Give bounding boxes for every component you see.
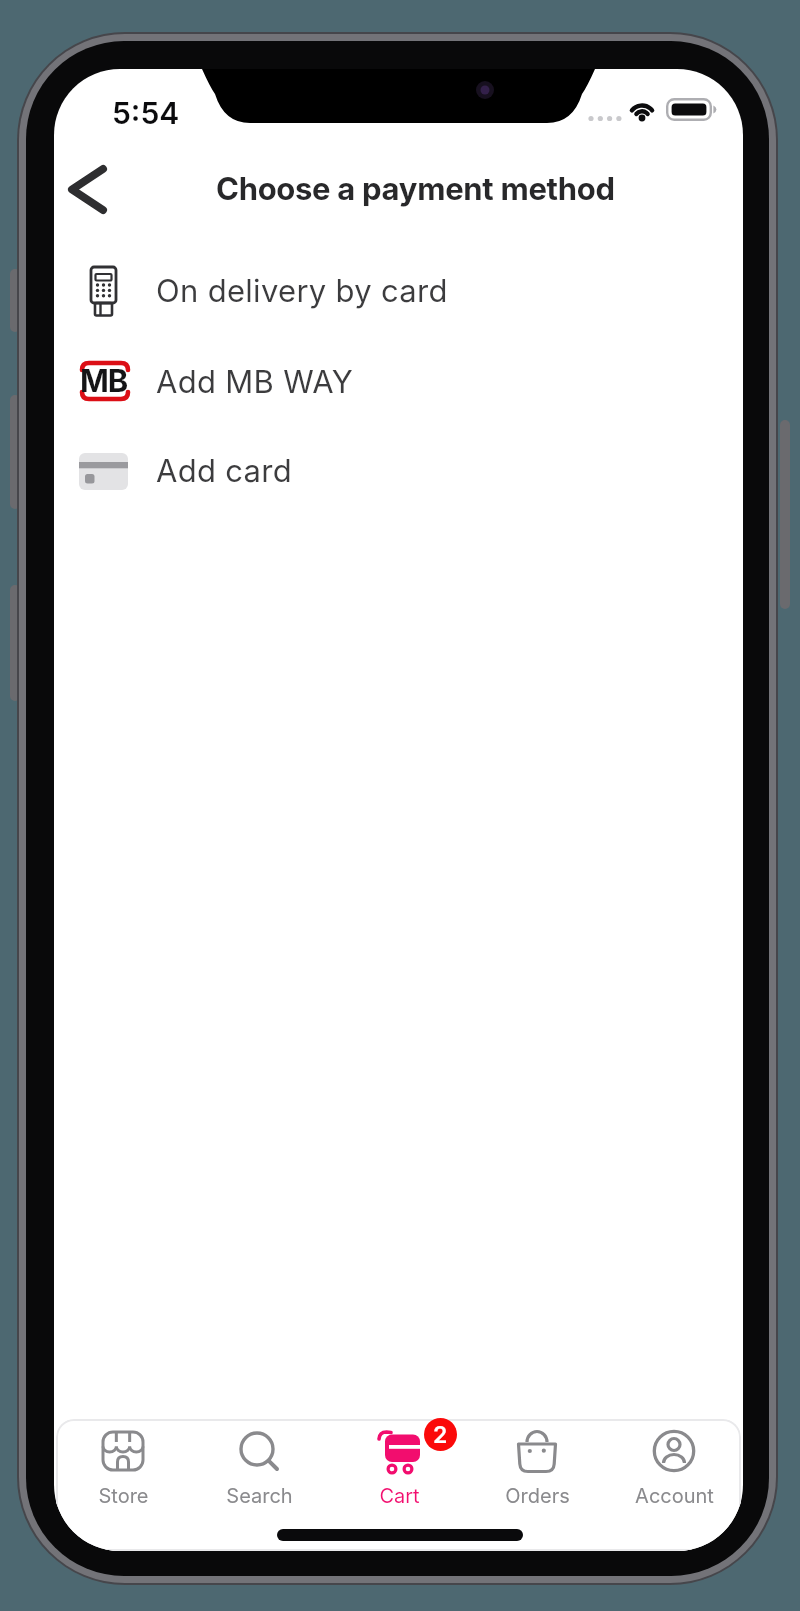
- staticText: Account: [635, 1484, 714, 1508]
- button[interactable]: Cart: [344, 1421, 454, 1525]
- staticText: 5:54: [112, 95, 180, 129]
- button[interactable]: Search: [204, 1421, 314, 1525]
- button[interactable]: [60, 161, 116, 217]
- button[interactable]: On delivery by card: [54, 260, 743, 322]
- button[interactable]: Store: [68, 1421, 178, 1525]
- staticText: Add MB WAY: [156, 363, 354, 401]
- button[interactable]: Orders: [482, 1421, 592, 1525]
- staticText: Orders: [505, 1484, 570, 1508]
- button[interactable]: MB: [54, 351, 743, 413]
- staticText: Search: [226, 1484, 293, 1508]
- staticText: Store: [98, 1484, 149, 1508]
- staticText: Choose a payment method: [216, 170, 615, 208]
- button[interactable]: Add card: [54, 440, 743, 502]
- staticText: Cart: [379, 1484, 420, 1508]
- staticText: MB: [80, 362, 127, 400]
- staticText: On delivery by card: [156, 272, 448, 310]
- staticText: 2: [433, 1421, 448, 1449]
- button[interactable]: Account: [619, 1421, 729, 1525]
- staticText: Add card: [156, 452, 293, 490]
